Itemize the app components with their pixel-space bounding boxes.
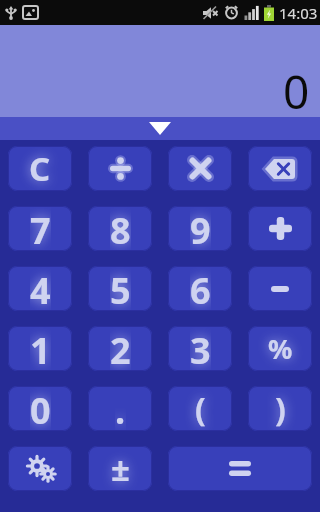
staticText: C — [29, 146, 51, 191]
button[interactable]: 4 — [8, 266, 72, 311]
button[interactable] — [168, 146, 232, 191]
button[interactable]: . — [88, 386, 152, 431]
button[interactable]: 8 — [88, 206, 152, 251]
staticText: % — [268, 330, 293, 367]
button[interactable] — [8, 446, 72, 491]
staticText: 4 — [30, 266, 51, 311]
button[interactable]: % — [248, 326, 312, 371]
staticText: ± — [111, 446, 130, 491]
staticText: 14:03 — [279, 3, 318, 23]
staticText: . — [115, 386, 126, 431]
button[interactable]: 5 — [88, 266, 152, 311]
button[interactable]: 1 — [8, 326, 72, 371]
staticText: 9 — [190, 206, 211, 251]
button[interactable] — [248, 266, 312, 311]
button[interactable]: ( — [168, 386, 232, 431]
staticText: ( — [195, 387, 206, 431]
staticText: 5 — [110, 266, 131, 311]
button[interactable]: ) — [248, 386, 312, 431]
button[interactable] — [0, 117, 320, 140]
staticText: 0 — [30, 386, 51, 431]
button[interactable]: 2 — [88, 326, 152, 371]
staticText: 6 — [190, 266, 211, 311]
staticText: 0 — [283, 60, 310, 123]
button[interactable]: 0 — [8, 386, 72, 431]
staticText: 8 — [110, 206, 131, 251]
button[interactable]: 7 — [8, 206, 72, 251]
button[interactable]: ± — [88, 446, 152, 491]
button[interactable]: 9 — [168, 206, 232, 251]
staticText: 1 — [30, 326, 51, 371]
button[interactable] — [248, 146, 312, 191]
staticText: ) — [275, 387, 286, 431]
staticText: 7 — [30, 206, 51, 251]
button[interactable] — [168, 446, 312, 491]
button[interactable]: 6 — [168, 266, 232, 311]
button[interactable]: C — [8, 146, 72, 191]
staticText: 2 — [110, 326, 131, 371]
button[interactable] — [248, 206, 312, 251]
staticText: 3 — [190, 326, 211, 371]
button[interactable] — [88, 146, 152, 191]
button[interactable]: 3 — [168, 326, 232, 371]
